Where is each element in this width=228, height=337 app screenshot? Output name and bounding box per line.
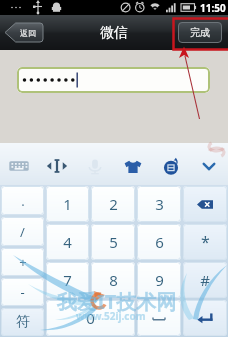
staticText: 微信 xyxy=(100,24,128,42)
button[interactable]: . xyxy=(1,186,44,215)
staticText: - xyxy=(20,283,25,301)
button[interactable]: 8 xyxy=(91,262,135,298)
button[interactable]: Sogou xyxy=(152,143,190,185)
button[interactable]: Delete xyxy=(183,186,227,222)
staticText: 完成 xyxy=(190,26,210,39)
staticText: 我爱IT技术网 xyxy=(57,288,177,315)
button[interactable]: Voice input xyxy=(76,143,114,185)
button[interactable]: 3 xyxy=(137,186,181,222)
staticText: 9 xyxy=(155,270,164,290)
button[interactable]: Hide keyboard xyxy=(190,143,228,185)
button[interactable]: / xyxy=(1,217,44,246)
staticText: 5 xyxy=(109,232,118,252)
staticText: 返回 xyxy=(20,28,36,38)
button[interactable]: 4 xyxy=(46,224,89,260)
button[interactable]: 5 xyxy=(91,224,135,260)
button[interactable]: Space xyxy=(137,300,181,336)
button[interactable]: # xyxy=(183,262,227,298)
staticText: www.52ij.com xyxy=(76,309,146,323)
button[interactable]: Keyboard xyxy=(0,143,38,185)
button[interactable]: * xyxy=(183,224,227,260)
staticText: + xyxy=(19,253,27,271)
button[interactable]: 9 xyxy=(137,262,181,298)
staticText: / xyxy=(20,223,25,241)
button[interactable]: - xyxy=(1,278,44,306)
staticText: 2 xyxy=(109,194,118,214)
button[interactable]: Theme xyxy=(114,143,152,185)
staticText: 符 xyxy=(16,313,30,331)
staticText: 11:50 xyxy=(200,1,226,15)
button[interactable]: 0 xyxy=(46,300,135,336)
button[interactable]: + xyxy=(1,248,44,276)
button[interactable]: 6 xyxy=(137,224,181,260)
button[interactable]: Enter xyxy=(183,300,227,336)
button[interactable] xyxy=(17,67,210,93)
staticText: 7 xyxy=(63,270,72,290)
button[interactable]: 2 xyxy=(91,186,135,222)
button[interactable]: 符 xyxy=(1,308,44,336)
button[interactable]: 完成 xyxy=(178,22,222,43)
staticText: 1 xyxy=(63,194,72,214)
staticText: 0 xyxy=(86,308,95,328)
staticText: . xyxy=(21,192,25,210)
button[interactable]: 7 xyxy=(46,262,89,298)
staticText: * xyxy=(201,231,210,253)
staticText: 6 xyxy=(155,232,164,252)
button[interactable]: Move cursor xyxy=(38,143,76,185)
button[interactable]: 1 xyxy=(46,186,89,222)
staticText: 3 xyxy=(155,194,164,214)
staticText: 4 xyxy=(63,232,72,252)
staticText: 8 xyxy=(109,270,118,290)
button[interactable]: 返回 xyxy=(5,23,43,42)
staticText: # xyxy=(200,270,210,290)
